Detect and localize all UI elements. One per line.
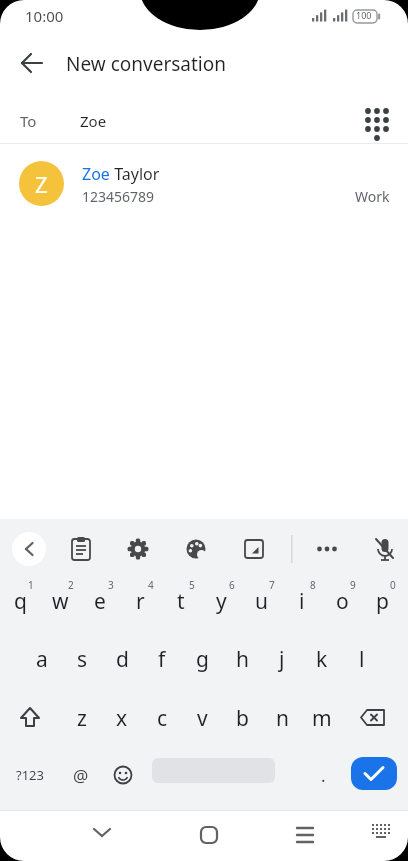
staticText: Zoe — [82, 163, 110, 185]
button[interactable]: k — [302, 631, 342, 687]
button[interactable] — [82, 812, 122, 852]
staticText: New conversation — [66, 51, 226, 77]
staticText: 0 — [390, 578, 396, 592]
button[interactable]: Z — [0, 150, 408, 218]
staticText: x — [116, 704, 128, 733]
staticText: h — [236, 645, 249, 674]
staticText: @ — [73, 764, 89, 787]
staticText: j — [279, 645, 285, 674]
button[interactable] — [10, 698, 50, 738]
button[interactable]: y — [201, 573, 241, 629]
staticText: 8 — [310, 578, 316, 592]
staticText: g — [196, 645, 209, 674]
button[interactable]: r — [120, 573, 160, 629]
button[interactable] — [365, 529, 405, 569]
button[interactable]: . — [305, 755, 341, 795]
button[interactable]: o — [322, 573, 362, 629]
button[interactable]: p — [362, 573, 402, 629]
button[interactable]: i — [282, 573, 322, 629]
staticText: l — [359, 645, 365, 674]
button[interactable]: c — [142, 690, 182, 746]
staticText: w — [52, 587, 69, 616]
staticText: 3 — [108, 578, 114, 592]
staticText: c — [157, 704, 168, 733]
staticText: To — [20, 111, 37, 131]
staticText: b — [236, 704, 249, 733]
button[interactable] — [234, 529, 274, 569]
button[interactable] — [61, 529, 101, 569]
staticText: 4 — [148, 578, 154, 592]
button[interactable] — [176, 529, 216, 569]
staticText: s — [77, 645, 88, 674]
staticText: z — [77, 704, 87, 733]
staticText: r — [136, 587, 145, 616]
button[interactable]: To — [0, 98, 408, 144]
staticText: p — [376, 587, 389, 616]
staticText: . — [321, 764, 326, 787]
button[interactable]: q — [0, 573, 40, 629]
button[interactable] — [361, 812, 401, 852]
staticText: f — [158, 645, 166, 674]
button[interactable] — [118, 529, 158, 569]
button[interactable]: h — [222, 631, 262, 687]
staticText: Taylor — [110, 163, 160, 185]
staticText: Z — [35, 169, 48, 199]
staticText: 123456789 — [82, 187, 155, 206]
staticText: u — [255, 587, 268, 616]
button[interactable] — [189, 812, 229, 852]
button[interactable]: z — [62, 690, 102, 746]
staticText: m — [312, 704, 332, 733]
button[interactable]: ?123 — [8, 755, 52, 795]
staticText: n — [276, 704, 289, 733]
staticText: Work — [355, 187, 390, 206]
staticText: d — [116, 645, 129, 674]
staticText: 10:00 — [25, 6, 64, 26]
staticText: o — [336, 587, 349, 616]
staticText: 9 — [350, 578, 356, 592]
staticText: v — [197, 704, 208, 733]
button[interactable] — [353, 698, 393, 738]
button[interactable]: x — [102, 690, 142, 746]
staticText: a — [36, 645, 48, 674]
button[interactable]: b — [222, 690, 262, 746]
button[interactable] — [358, 103, 398, 143]
button[interactable]: t — [161, 573, 201, 629]
button[interactable]: w — [40, 573, 80, 629]
button[interactable]: d — [102, 631, 142, 687]
staticText: q — [14, 587, 27, 616]
button[interactable]: @ — [61, 755, 101, 795]
staticText: y — [216, 587, 227, 616]
staticText: ?123 — [16, 766, 44, 784]
staticText: i — [299, 587, 305, 616]
staticText: 1 — [28, 578, 34, 592]
staticText: e — [94, 587, 106, 616]
staticText: 100 — [356, 9, 372, 21]
staticText: 6 — [229, 578, 235, 592]
button[interactable] — [14, 45, 50, 81]
button[interactable]: l — [342, 631, 382, 687]
button[interactable]: f — [142, 631, 182, 687]
button[interactable] — [307, 529, 347, 569]
staticText: Zoe — [80, 111, 107, 131]
button[interactable] — [12, 532, 46, 566]
button[interactable]: v — [182, 690, 222, 746]
button[interactable]: e — [80, 573, 120, 629]
staticText: 5 — [189, 578, 195, 592]
button[interactable]: m — [302, 690, 342, 746]
button[interactable] — [285, 812, 325, 852]
button[interactable]: n — [262, 690, 302, 746]
button[interactable]: j — [262, 631, 302, 687]
button[interactable]: s — [62, 631, 102, 687]
staticText: 7 — [269, 578, 275, 592]
staticText: k — [316, 645, 328, 674]
button[interactable]: a — [22, 631, 62, 687]
staticText: t — [177, 587, 185, 616]
button[interactable]: g — [182, 631, 222, 687]
button[interactable] — [351, 757, 397, 790]
button[interactable] — [103, 755, 143, 795]
staticText: 2 — [68, 578, 74, 592]
button[interactable]: u — [241, 573, 281, 629]
